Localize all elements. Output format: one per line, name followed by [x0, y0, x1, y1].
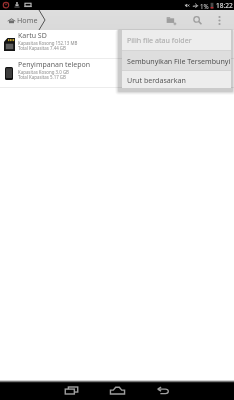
staticText: Penyimpanan telepon [18, 60, 91, 70]
staticText: Urut berdasarkan [127, 75, 186, 85]
button[interactable]: Urut berdasarkan [122, 71, 231, 88]
staticText: Sembunyikan File Tersembunyi [127, 56, 231, 66]
staticText: Total Kapasitas 7.44 GB [18, 45, 66, 51]
staticText: Kapasitas Kosong 3.0 GB [18, 69, 69, 75]
button[interactable]: Home [94, 380, 140, 400]
staticText: 18:22 [216, 1, 233, 10]
button[interactable]: Penyimpanan telepon [0, 59, 234, 87]
button[interactable]: Recents [48, 380, 94, 400]
staticText: Home [17, 15, 38, 25]
button[interactable]: More options [210, 10, 228, 30]
button[interactable]: Sembunyikan File Tersembunyi [122, 51, 231, 70]
button[interactable]: Home [0, 10, 38, 30]
button[interactable]: Kartu SD [0, 30, 234, 58]
staticText: Total Kapasitas 5.17 GB [18, 74, 66, 80]
button[interactable]: Search [184, 10, 210, 30]
button[interactable]: Back [140, 380, 186, 400]
staticText: Kartu SD [18, 31, 47, 41]
button[interactable]: New folder [158, 10, 184, 30]
staticText: 1% [200, 2, 209, 10]
staticText: Pilih file atau folder [127, 35, 192, 45]
staticText: Kapasitas Kosong 152.13 MB [18, 40, 78, 46]
button[interactable]: Pilih file atau folder [122, 30, 231, 50]
